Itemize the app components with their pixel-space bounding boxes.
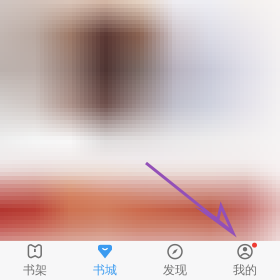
staticText: 发现 [163,263,187,277]
staticText: 我的 [233,263,257,277]
button[interactable]: 发现 [140,241,210,280]
button[interactable]: 书架 [0,241,70,280]
button[interactable]: 我的 [210,241,280,280]
staticText: 书架 [23,263,47,277]
staticText: 书城 [93,263,117,277]
button[interactable]: 书城 [70,241,140,280]
